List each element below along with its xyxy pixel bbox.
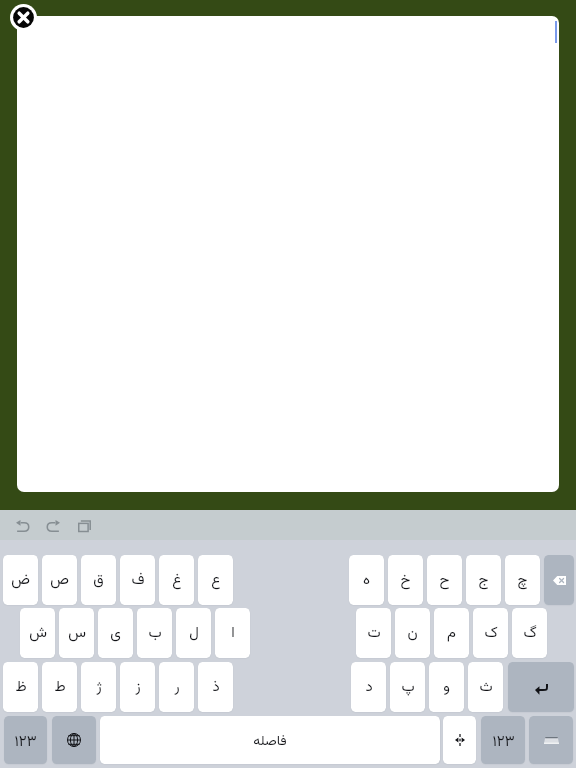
button[interactable]: پ: [390, 662, 425, 712]
staticText: ض: [11, 569, 30, 592]
staticText: فاصله: [253, 731, 287, 753]
button[interactable]: ط: [42, 662, 77, 712]
button[interactable]: ل: [176, 608, 211, 658]
button[interactable]: Copy: [78, 520, 91, 533]
staticText: ظ: [15, 676, 27, 699]
button[interactable]: [17, 16, 559, 492]
button[interactable]: Hide keyboard: [529, 716, 573, 764]
staticText: ا: [231, 622, 235, 645]
button[interactable]: ک: [473, 608, 508, 658]
button[interactable]: Redo: [46, 520, 60, 532]
button[interactable]: خ: [388, 555, 423, 605]
button[interactable]: ی: [98, 608, 133, 658]
button[interactable]: فاصله: [100, 716, 440, 764]
button[interactable]: ق: [81, 555, 116, 605]
staticText: ژ: [96, 676, 102, 699]
staticText: ه: [363, 569, 370, 592]
staticText: و: [443, 676, 450, 699]
button[interactable]: ر: [159, 662, 194, 712]
button[interactable]: Switch language: [52, 716, 96, 764]
button[interactable]: Enter: [508, 662, 574, 712]
button[interactable]: ف: [120, 555, 155, 605]
button[interactable]: ش: [20, 608, 55, 658]
staticText: ب: [148, 622, 162, 645]
staticText: ذ: [212, 676, 220, 699]
staticText: ی: [110, 622, 121, 645]
staticText: د: [365, 676, 373, 699]
button[interactable]: ج: [466, 555, 501, 605]
button[interactable]: ض: [3, 555, 38, 605]
staticText: ش: [29, 622, 47, 645]
button[interactable]: ح: [427, 555, 462, 605]
staticText: ع: [211, 569, 221, 592]
staticText: ج: [478, 569, 489, 592]
button[interactable]: Backspace: [544, 555, 574, 605]
button[interactable]: Move cursor: [443, 716, 476, 764]
staticText: ف: [131, 569, 145, 592]
button[interactable]: Close: [10, 4, 37, 31]
staticText: گ: [523, 622, 537, 645]
button[interactable]: ت: [356, 608, 391, 658]
button[interactable]: م: [434, 608, 469, 658]
staticText: ث: [479, 676, 493, 699]
staticText: ۱۲۳: [492, 731, 515, 754]
staticText: ر: [174, 676, 180, 699]
button[interactable]: س: [59, 608, 94, 658]
button[interactable]: و: [429, 662, 464, 712]
button[interactable]: ژ: [81, 662, 116, 712]
staticText: م: [447, 622, 456, 645]
button[interactable]: ث: [468, 662, 503, 712]
button[interactable]: ذ: [198, 662, 233, 712]
button[interactable]: چ: [505, 555, 540, 605]
button[interactable]: ع: [198, 555, 233, 605]
button[interactable]: ب: [137, 608, 172, 658]
button[interactable]: ن: [395, 608, 430, 658]
button[interactable]: ۱۲۳: [4, 716, 47, 764]
staticText: ن: [407, 622, 418, 645]
staticText: پ: [401, 676, 415, 699]
button[interactable]: غ: [159, 555, 194, 605]
button[interactable]: ا: [215, 608, 250, 658]
staticText: ۱۲۳: [14, 731, 37, 754]
button[interactable]: Undo: [16, 520, 30, 532]
staticText: ط: [54, 676, 66, 699]
button[interactable]: ۱۲۳: [481, 716, 525, 764]
button[interactable]: گ: [512, 608, 547, 658]
staticText: ص: [50, 569, 69, 592]
staticText: ک: [484, 622, 498, 645]
staticText: س: [68, 622, 86, 645]
button[interactable]: ه: [349, 555, 384, 605]
button[interactable]: د: [351, 662, 386, 712]
staticText: ق: [93, 569, 104, 592]
staticText: غ: [172, 569, 182, 592]
staticText: ت: [367, 622, 381, 645]
button[interactable]: ز: [120, 662, 155, 712]
staticText: ل: [189, 622, 199, 645]
button[interactable]: ص: [42, 555, 77, 605]
button[interactable]: ظ: [3, 662, 38, 712]
staticText: خ: [400, 569, 411, 592]
staticText: چ: [517, 569, 528, 592]
staticText: ح: [439, 569, 450, 592]
staticText: ز: [135, 676, 141, 699]
